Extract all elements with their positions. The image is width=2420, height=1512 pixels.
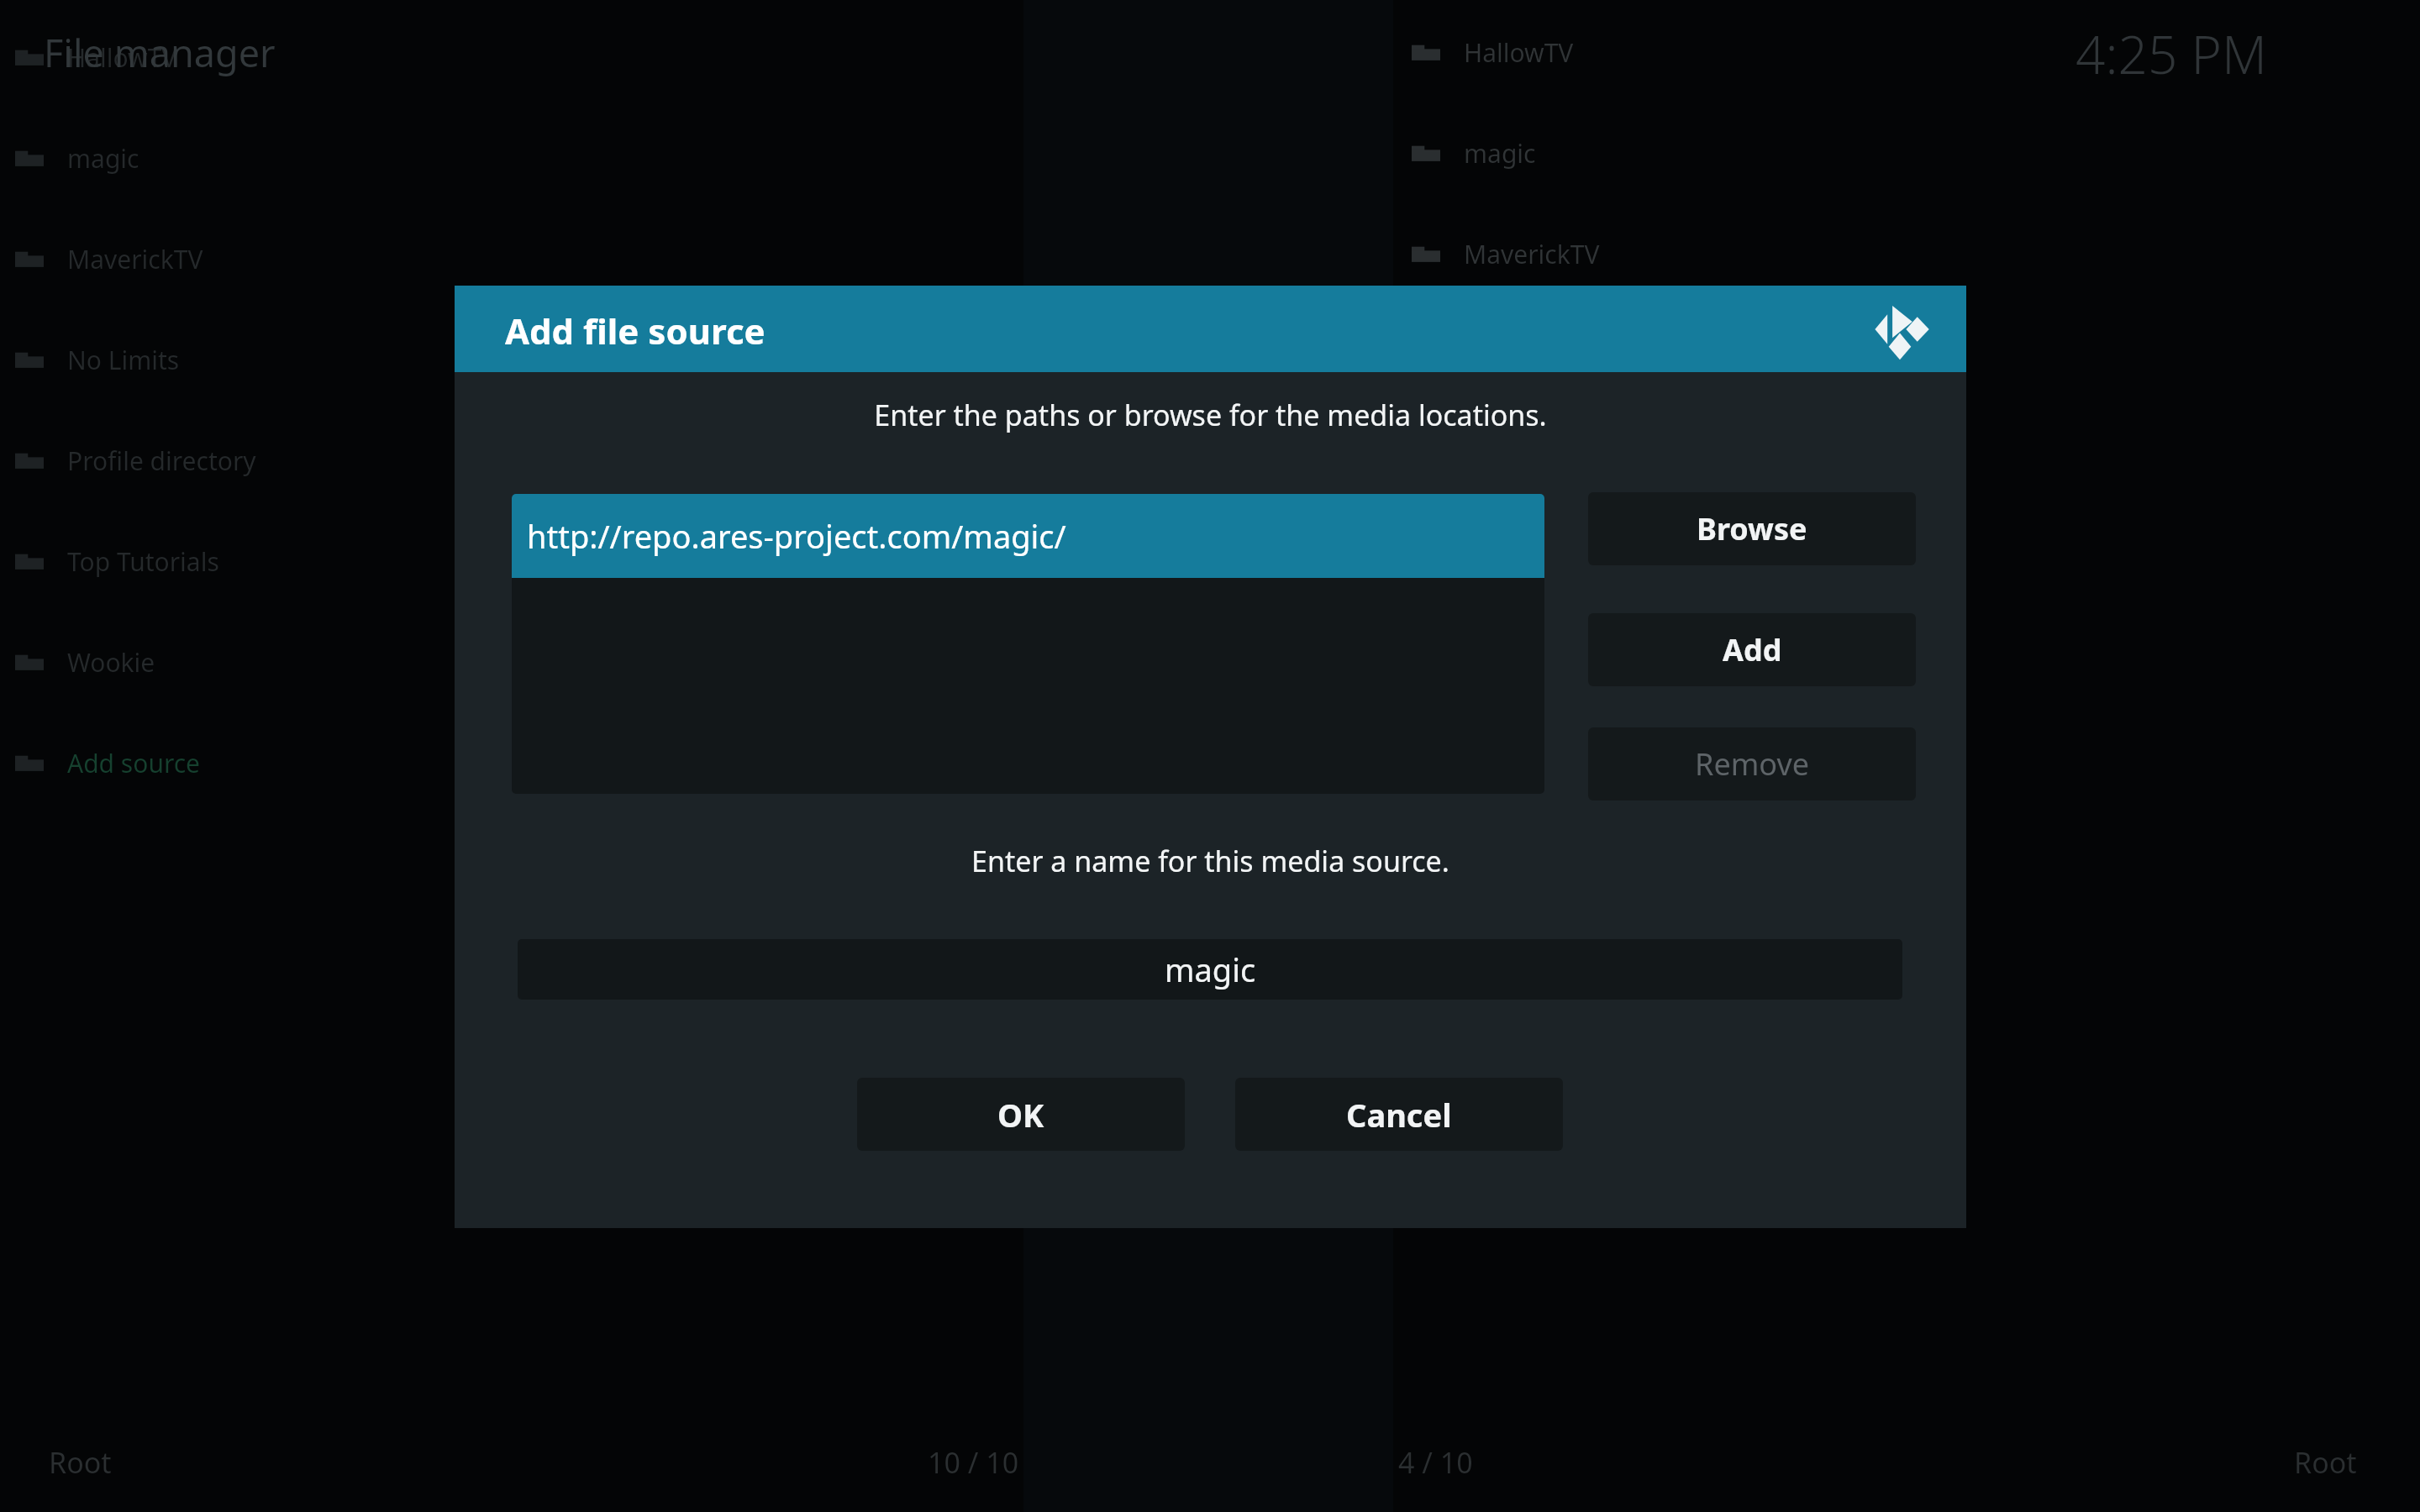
staticText: Root — [49, 1443, 112, 1482]
staticText: File manager — [44, 27, 276, 78]
staticText: Cancel — [1346, 1093, 1452, 1137]
button[interactable]: magic — [1412, 128, 1536, 178]
staticText: Remove — [1695, 743, 1810, 785]
staticText: Browse — [1697, 508, 1807, 549]
staticText: magic — [1165, 948, 1256, 991]
staticText: Profile directory — [67, 444, 256, 478]
staticText: magic — [1464, 136, 1536, 171]
button[interactable]: MaverickTV — [15, 234, 203, 284]
staticText: magic — [67, 141, 139, 176]
button[interactable]: Top Tutorials — [15, 536, 219, 586]
button[interactable]: HallowTV — [15, 32, 177, 82]
button[interactable]: Remove — [1588, 727, 1916, 801]
staticText: OK — [997, 1093, 1044, 1137]
button[interactable]: MaverickTV — [1412, 228, 1600, 279]
button[interactable]: Add — [1588, 613, 1916, 686]
staticText: MaverickTV — [1464, 237, 1600, 271]
button[interactable]: No Limits — [15, 334, 180, 385]
staticText: MaverickTV — [67, 242, 203, 276]
staticText: No Limits — [67, 343, 180, 377]
button[interactable]: Cancel — [1235, 1078, 1563, 1151]
staticText: http://repo.ares-project.com/magic/ — [527, 514, 1066, 558]
button[interactable]: OK — [857, 1078, 1185, 1151]
staticText: 10 / 10 — [928, 1443, 1019, 1482]
staticText: Enter the paths or browse for the media … — [874, 396, 1547, 434]
button[interactable]: Add source — [15, 738, 201, 788]
staticText: HallowTV — [67, 40, 177, 75]
button[interactable]: http://repo.ares-project.com/magic/ — [512, 494, 1544, 578]
button[interactable]: Profile directory — [15, 435, 256, 486]
staticText: Wookie — [67, 645, 155, 680]
staticText: 4 / 10 — [1398, 1443, 1473, 1482]
button[interactable]: HallowTV — [1412, 27, 1574, 77]
staticText: Top Tutorials — [67, 544, 219, 579]
button[interactable]: magic — [15, 133, 139, 183]
staticText: Add — [1723, 629, 1782, 670]
staticText: 4:25 PM — [2075, 18, 2268, 89]
button[interactable]: magic — [518, 939, 1902, 1000]
staticText: Add source — [67, 746, 201, 780]
staticText: Enter a name for this media source. — [971, 842, 1449, 880]
staticText: Root — [2294, 1443, 2357, 1482]
button[interactable]: Wookie — [15, 637, 155, 687]
button[interactable]: Browse — [1588, 492, 1916, 565]
staticText: HallowTV — [1464, 35, 1574, 70]
staticText: Add file source — [505, 307, 765, 354]
